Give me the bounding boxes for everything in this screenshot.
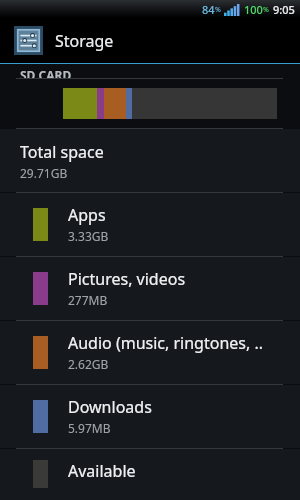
staticText: 29.71GB <box>20 165 68 181</box>
button[interactable]: Settings <box>0 18 300 63</box>
staticText: 100 <box>244 2 263 17</box>
staticText: Storage <box>55 30 114 52</box>
staticText: Available <box>68 460 136 482</box>
staticText: SD CARD <box>20 67 72 81</box>
staticText: Pictures, videos <box>68 268 186 290</box>
staticText: 9:05 <box>273 2 295 17</box>
staticText: Total space <box>20 141 104 163</box>
button[interactable]: Downloads <box>0 385 300 448</box>
other: Settings <box>14 26 43 55</box>
button[interactable]: Pictures, videos <box>0 257 300 320</box>
staticText: 3.33GB <box>68 228 109 244</box>
button[interactable]: Available <box>0 449 300 500</box>
button[interactable]: Audio (music, ringtones, .. <box>0 321 300 384</box>
staticText: 277MB <box>68 292 108 308</box>
staticText: % <box>215 5 221 15</box>
staticText: 5.97MB <box>68 420 111 436</box>
button[interactable]: Apps <box>0 193 300 256</box>
staticText: Audio (music, ringtones, .. <box>68 332 264 354</box>
staticText: Downloads <box>68 396 152 418</box>
staticText: % <box>263 5 269 15</box>
staticText: 84 <box>202 2 215 17</box>
button[interactable]: Total space <box>0 129 300 192</box>
staticText: Apps <box>68 204 106 226</box>
staticText: 2.62GB <box>68 356 109 372</box>
